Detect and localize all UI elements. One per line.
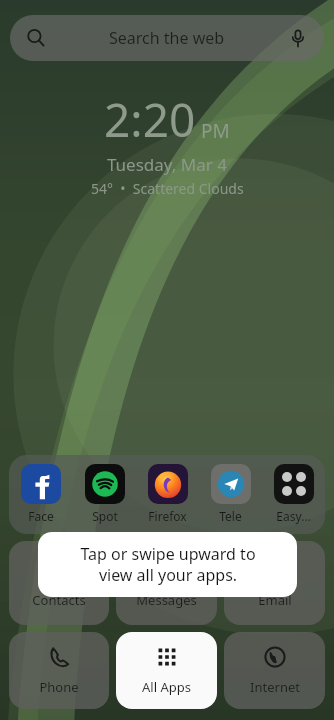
staticText: Search the web	[109, 27, 225, 49]
staticText: Firefox	[148, 508, 187, 524]
staticText: Tuesday, Mar 4	[107, 153, 227, 176]
staticText: Internet	[250, 678, 300, 696]
button[interactable]: Phone	[9, 632, 109, 709]
staticText: All Apps	[142, 678, 191, 696]
button[interactable]: Tap or swipe upward to view all your app…	[38, 532, 297, 597]
staticText: Contacts	[32, 591, 86, 609]
staticText: Tele	[219, 508, 242, 524]
button[interactable]: Firefox	[136, 455, 199, 534]
button[interactable]: All Apps	[116, 632, 217, 709]
other: Search	[26, 28, 46, 48]
staticText: Email	[258, 591, 292, 609]
button[interactable]: Easy…	[262, 455, 325, 534]
staticText: Easy…	[276, 508, 311, 524]
button[interactable]: Internet	[224, 632, 325, 709]
button[interactable]: Spot	[73, 455, 136, 534]
staticText: Messages	[136, 591, 197, 609]
staticText: 54° • Scattered Clouds	[91, 179, 244, 198]
staticText: Face	[28, 508, 54, 524]
staticText: 2:20	[104, 88, 196, 151]
button[interactable]: Tele	[199, 455, 262, 534]
staticText: Tap or swipe upward to view all your app…	[80, 543, 256, 586]
staticText: Phone	[39, 678, 79, 696]
button[interactable]: Face	[9, 455, 73, 534]
button[interactable]: Contacts	[9, 541, 109, 625]
staticText: PM	[201, 118, 230, 144]
button[interactable]: Email	[224, 541, 325, 625]
button[interactable]: Search	[10, 15, 324, 61]
button[interactable]: 2:20	[0, 88, 334, 198]
button[interactable]: Messages	[116, 541, 217, 625]
staticText: Spot	[92, 508, 118, 524]
other: Voice search	[288, 28, 308, 48]
